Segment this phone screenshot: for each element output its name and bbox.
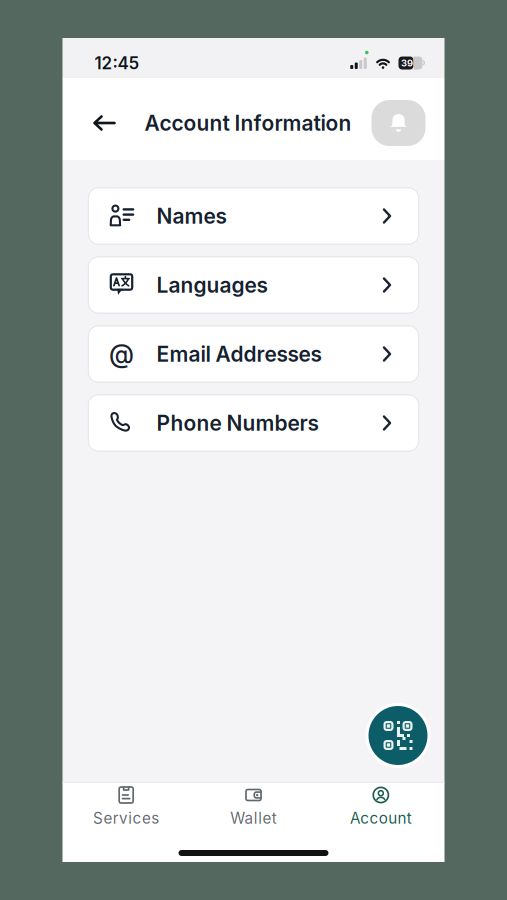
button[interactable]: Wallet xyxy=(190,786,317,827)
staticText: @ xyxy=(109,339,134,369)
button[interactable]: Names xyxy=(87,187,419,245)
button[interactable]: Back xyxy=(62,105,115,141)
staticText: Email Addresses xyxy=(156,341,321,367)
staticText: 39 xyxy=(401,57,413,69)
button[interactable]: Notifications xyxy=(371,100,425,146)
button[interactable]: Show QR code xyxy=(365,703,430,768)
staticText: Languages xyxy=(156,272,267,298)
staticText: Phone Numbers xyxy=(156,410,318,436)
button[interactable]: Services xyxy=(62,786,190,827)
staticText: Services xyxy=(93,809,159,827)
staticText: Account Information xyxy=(144,110,351,136)
button[interactable]: @ xyxy=(87,325,419,383)
staticText: 12:45 xyxy=(94,53,139,73)
button[interactable]: Languages xyxy=(87,256,419,314)
staticText: Wallet xyxy=(230,809,277,827)
button[interactable]: Account xyxy=(317,786,444,827)
staticText: Account xyxy=(350,809,412,827)
staticText: Names xyxy=(156,203,226,229)
button[interactable]: Phone Numbers xyxy=(87,394,419,452)
